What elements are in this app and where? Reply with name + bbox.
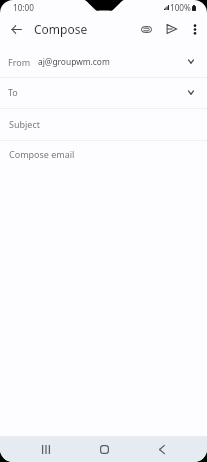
button[interactable]: From xyxy=(0,42,207,77)
staticText: Subject xyxy=(9,118,41,130)
button[interactable]: To xyxy=(0,78,207,108)
button[interactable]: Navigate up xyxy=(5,18,28,41)
button[interactable]: Home xyxy=(87,436,121,462)
staticText: From xyxy=(8,56,31,68)
button[interactable]: Back xyxy=(145,436,179,462)
staticText: Compose email xyxy=(9,148,75,160)
staticText: 100% xyxy=(170,2,191,13)
button[interactable]: Attach file xyxy=(134,17,158,41)
staticText: Compose xyxy=(34,21,88,37)
button[interactable]: Send xyxy=(159,17,183,41)
staticText: aj@groupwm.com xyxy=(38,56,110,67)
button[interactable]: Recent apps xyxy=(29,436,63,462)
staticText: To xyxy=(8,86,18,98)
button[interactable]: Compose email xyxy=(0,141,207,171)
staticText: 10:00 xyxy=(13,2,34,13)
button[interactable]: More options xyxy=(183,17,207,41)
button[interactable]: Subject xyxy=(0,109,207,140)
